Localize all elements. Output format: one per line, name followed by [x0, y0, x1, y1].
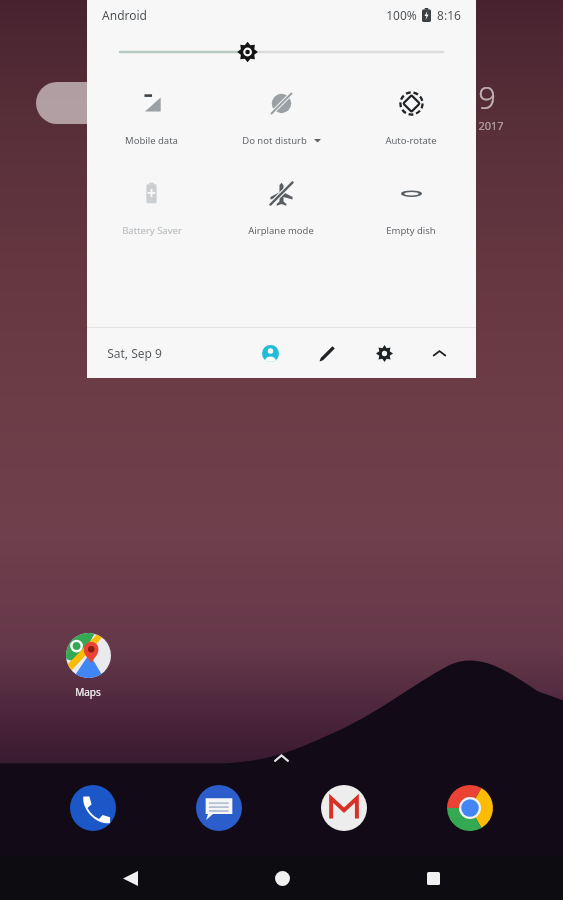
button[interactable]: Sat, Sep 9 — [107, 345, 162, 361]
button[interactable]: Recents — [411, 856, 455, 900]
staticText: 2017 — [478, 118, 504, 133]
button[interactable]: Back — [108, 856, 152, 900]
button[interactable]: Phone — [61, 776, 125, 840]
button[interactable]: Auto-rotate — [346, 90, 476, 147]
button[interactable]: Collapse — [424, 338, 454, 368]
button[interactable]: All apps — [270, 747, 293, 770]
staticText: 100% — [386, 7, 417, 23]
button[interactable]: Google Search — [36, 82, 148, 124]
staticText: 9 — [478, 76, 496, 118]
button[interactable]: Maps — [57, 633, 119, 699]
button[interactable]: Gmail — [312, 776, 376, 840]
button[interactable]: Mobile data — [87, 90, 216, 147]
button[interactable]: Account — [255, 338, 285, 368]
staticText: Do not disturb — [242, 134, 307, 147]
staticText: Auto-rotate — [385, 134, 437, 147]
button[interactable]: Messages — [187, 776, 251, 840]
button[interactable]: Settings — [369, 338, 399, 368]
button[interactable]: Brightness — [87, 30, 476, 74]
button[interactable]: Do not disturb — [216, 90, 346, 147]
staticText: Battery Saver — [122, 224, 182, 237]
staticText: 8:16 — [437, 7, 461, 23]
button[interactable]: Battery Saver — [87, 180, 216, 237]
button[interactable]: Chrome — [438, 776, 502, 840]
staticText: Mobile data — [125, 134, 178, 147]
button[interactable]: Edit — [312, 338, 342, 368]
staticText: Maps — [75, 685, 101, 699]
staticText: Empty dish — [386, 224, 436, 237]
staticText: Android — [102, 7, 147, 23]
button[interactable]: Empty dish — [346, 180, 476, 237]
staticText: Airplane mode — [248, 224, 314, 237]
button[interactable]: Home — [260, 856, 304, 900]
staticText: Sat, Sep 9 — [107, 345, 162, 361]
button[interactable]: Airplane mode — [216, 180, 346, 237]
